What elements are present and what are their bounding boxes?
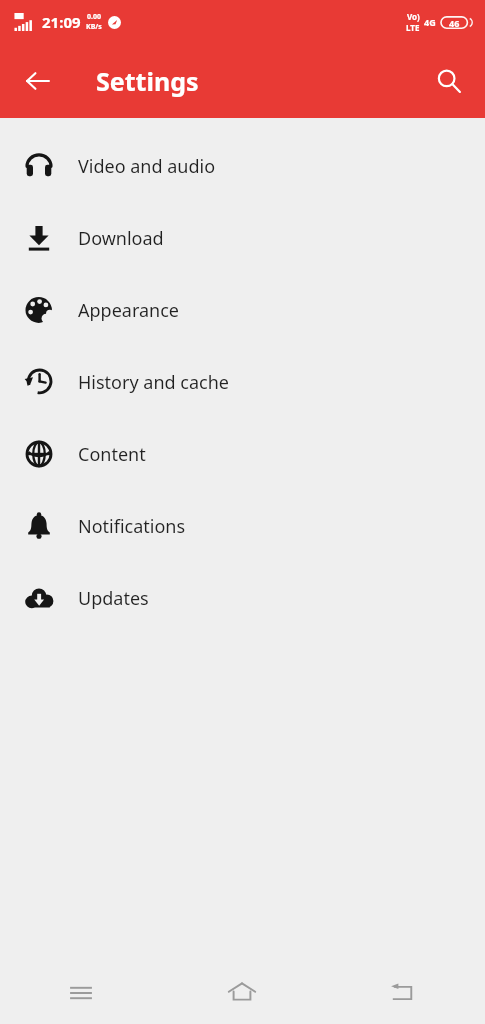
staticText: 0.00 — [87, 12, 101, 22]
staticText: 46 — [449, 17, 460, 29]
staticText: Video and audio — [78, 154, 216, 179]
button[interactable]: Search — [425, 57, 473, 105]
button[interactable]: Home — [211, 962, 273, 1024]
button[interactable]: History and cache — [0, 346, 485, 418]
staticText: LTE — [406, 22, 420, 33]
button[interactable]: Notifications — [0, 490, 485, 562]
staticText: Download — [78, 226, 164, 251]
staticText: 4G — [424, 16, 436, 28]
button[interactable]: Updates — [0, 562, 485, 634]
staticText: 21:09 — [42, 12, 81, 32]
button[interactable]: Download — [0, 202, 485, 274]
button[interactable]: Content — [0, 418, 485, 490]
staticText: History and cache — [78, 370, 229, 395]
staticText: KB/s — [86, 22, 102, 32]
button[interactable]: Video and audio — [0, 130, 485, 202]
staticText: Appearance — [78, 298, 179, 323]
button[interactable]: Recent apps — [50, 962, 112, 1024]
staticText: Vo) — [407, 11, 420, 22]
staticText: Settings — [96, 64, 199, 98]
staticText: Content — [78, 442, 146, 467]
button[interactable]: Back — [14, 57, 62, 105]
button[interactable]: Appearance — [0, 274, 485, 346]
button[interactable]: Back — [373, 962, 435, 1024]
staticText: Updates — [78, 586, 149, 611]
staticText: Notifications — [78, 514, 186, 539]
